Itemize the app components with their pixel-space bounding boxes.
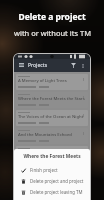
staticText: Where the Forest Meets the Stars <box>18 96 85 102</box>
staticText: Delete project leaving TM <box>30 189 83 195</box>
staticText: And the Mountains Echoed <box>18 132 72 138</box>
button[interactable]: Song of the Bright Wanderer <box>16 146 88 162</box>
staticText: The Voices of the Ocean at Night <box>18 114 84 120</box>
button[interactable]: Finish project <box>14 164 90 175</box>
button[interactable]: Delete project and project TM <box>14 175 90 186</box>
staticText: Delete a project <box>18 11 86 23</box>
staticText: Where the Forest Meets the Stars <box>19 153 85 160</box>
button[interactable]: The Voices of the Ocean at Night <box>16 110 88 126</box>
button[interactable]: Project options <box>80 148 86 154</box>
button[interactable]: Where the Forest Meets the Stars <box>16 92 88 108</box>
button[interactable]: Project options <box>80 112 86 118</box>
button[interactable]: Project options <box>80 130 86 136</box>
button[interactable]: Filter <box>69 61 78 70</box>
staticText: with or without its TM <box>14 28 91 38</box>
button[interactable]: Delete project leaving TM <box>14 186 90 197</box>
button[interactable]: A Memory of Light Trees <box>16 74 88 90</box>
staticText: Finish project <box>30 167 58 173</box>
button[interactable]: Project options <box>80 76 86 82</box>
button[interactable]: And the Mountains Echoed <box>16 128 88 144</box>
staticText: Song of the Bright Wanderer <box>18 150 76 156</box>
button[interactable]: Open navigation menu <box>17 61 26 70</box>
staticText: Delete project and project TM <box>30 178 86 184</box>
button[interactable]: More options <box>78 61 87 70</box>
staticText: Projects <box>28 62 69 69</box>
staticText: A Memory of Light Trees <box>18 78 67 84</box>
button[interactable]: Project options <box>80 94 86 100</box>
